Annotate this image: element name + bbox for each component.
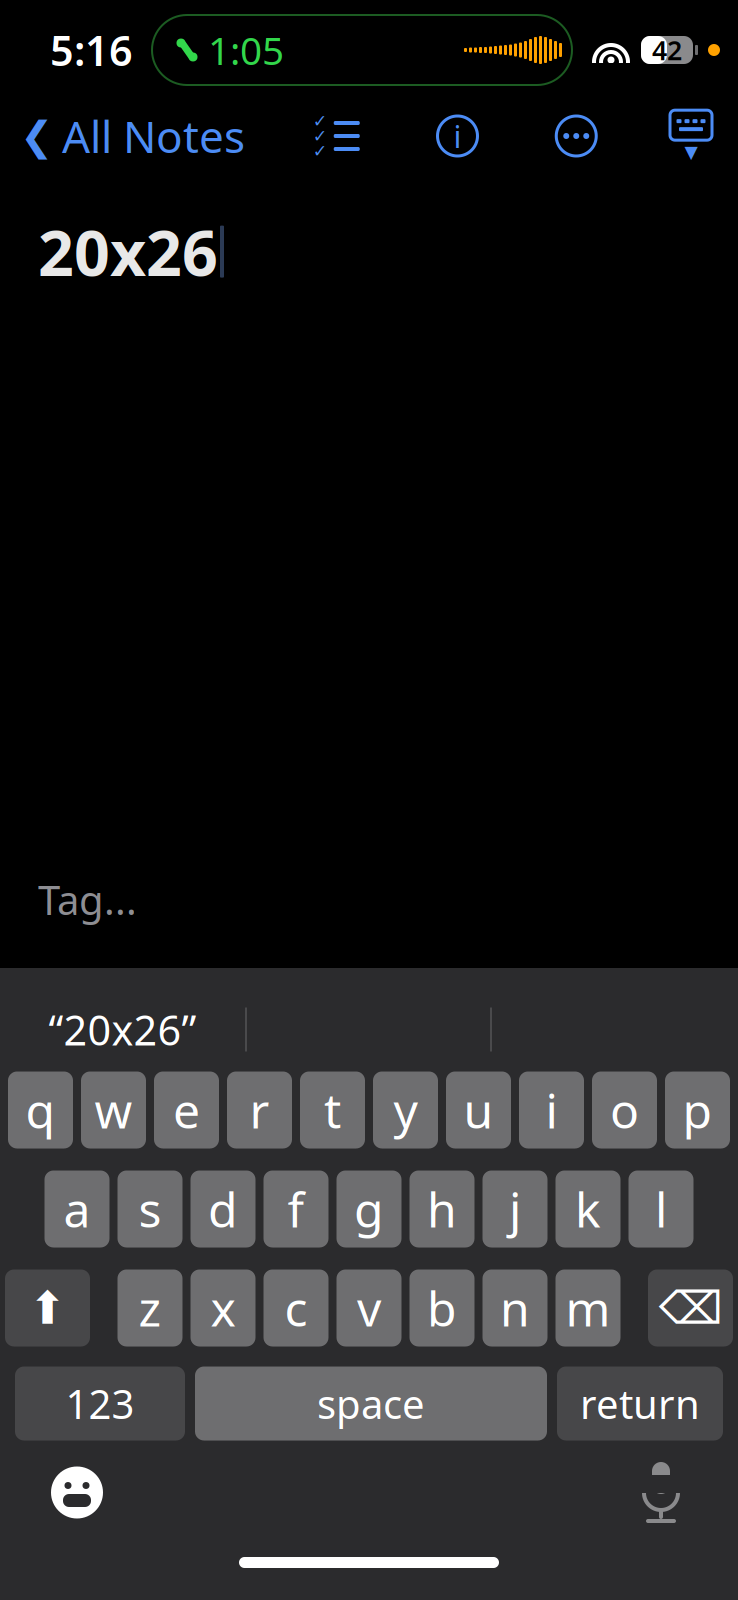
staticText: ✓ <box>313 126 328 146</box>
staticText: o <box>610 1078 639 1142</box>
button[interactable]: z <box>117 1269 182 1346</box>
button[interactable]: m <box>555 1269 620 1346</box>
staticText: d <box>208 1177 238 1241</box>
staticText: e <box>173 1078 200 1142</box>
button[interactable]: u <box>446 1071 511 1148</box>
staticText: b <box>427 1276 457 1340</box>
button[interactable]: q <box>8 1071 73 1148</box>
staticText: ❮ <box>20 113 54 159</box>
button[interactable]: j <box>482 1170 547 1247</box>
staticText: z <box>138 1276 161 1340</box>
button[interactable]: w <box>81 1071 146 1148</box>
button[interactable]: f <box>263 1170 328 1247</box>
button[interactable]: r <box>227 1071 292 1148</box>
button[interactable]: o <box>592 1071 657 1148</box>
button[interactable]: “20x26” <box>0 992 245 1066</box>
staticText: ⬆ <box>28 1282 66 1334</box>
staticText: x <box>210 1276 235 1340</box>
staticText: ✓ <box>313 141 328 161</box>
staticText: i <box>545 1078 557 1142</box>
staticText: m <box>565 1276 610 1340</box>
staticText: p <box>682 1078 712 1142</box>
button[interactable]: k <box>555 1170 620 1247</box>
staticText: 5:16 <box>50 23 133 77</box>
staticText: i <box>453 116 461 156</box>
button[interactable]: a <box>44 1170 109 1247</box>
staticText: ✓ <box>313 111 328 131</box>
staticText: 1:05 <box>208 24 284 76</box>
staticText: g <box>354 1177 384 1241</box>
button[interactable]: x <box>190 1269 255 1346</box>
staticText: return <box>580 1377 700 1430</box>
staticText: ⌫ <box>658 1282 722 1334</box>
staticText: w <box>94 1078 132 1142</box>
button[interactable]: i <box>519 1071 584 1148</box>
staticText: h <box>427 1177 457 1241</box>
button[interactable]: b <box>409 1269 474 1346</box>
staticText: space <box>317 1377 425 1430</box>
staticText: a <box>63 1177 90 1241</box>
button[interactable]: t <box>300 1071 365 1148</box>
staticText: u <box>463 1078 493 1142</box>
button[interactable]: c <box>263 1269 328 1346</box>
staticText: All Notes <box>62 107 245 165</box>
button[interactable]: n <box>482 1269 547 1346</box>
staticText: ▼ <box>684 142 697 162</box>
staticText: r <box>249 1078 269 1142</box>
staticText: l <box>655 1177 667 1241</box>
button[interactable]: Dictate <box>626 1453 696 1531</box>
button[interactable]: ❮ <box>0 99 245 173</box>
staticText: y <box>393 1078 417 1142</box>
button[interactable]: Info <box>428 113 486 159</box>
staticText: c <box>284 1276 307 1340</box>
button[interactable]: Emoji <box>42 1457 112 1527</box>
button[interactable]: h <box>409 1170 474 1247</box>
staticText: k <box>575 1177 601 1241</box>
button[interactable]: Hide Keyboard <box>666 111 738 161</box>
button[interactable]: d <box>190 1170 255 1247</box>
staticText: q <box>25 1078 55 1142</box>
button[interactable]: g <box>336 1170 401 1247</box>
staticText: 20x26 <box>38 210 218 293</box>
button[interactable]: space <box>195 1366 547 1440</box>
staticText: n <box>500 1276 530 1340</box>
button[interactable]: Shift <box>5 1269 90 1346</box>
staticText: t <box>324 1078 341 1142</box>
staticText: 123 <box>65 1377 134 1430</box>
button[interactable]: e <box>154 1071 219 1148</box>
button[interactable]: v <box>336 1269 401 1346</box>
button[interactable]: Checklist <box>306 116 368 156</box>
staticText: f <box>287 1177 304 1241</box>
button[interactable]: p <box>665 1071 730 1148</box>
button[interactable]: More <box>547 113 605 159</box>
staticText: s <box>138 1177 161 1241</box>
button[interactable]: y <box>373 1071 438 1148</box>
button[interactable]: return <box>557 1366 723 1440</box>
staticText: j <box>509 1177 521 1241</box>
button[interactable]: l <box>628 1170 693 1247</box>
staticText: 42 <box>652 32 682 68</box>
button[interactable]: Delete <box>648 1269 733 1346</box>
button[interactable]: 123 <box>15 1366 185 1440</box>
staticText: “20x26” <box>48 1002 196 1057</box>
button[interactable]: s <box>117 1170 182 1247</box>
staticText: Tag... <box>38 873 137 926</box>
staticText: v <box>357 1276 381 1340</box>
